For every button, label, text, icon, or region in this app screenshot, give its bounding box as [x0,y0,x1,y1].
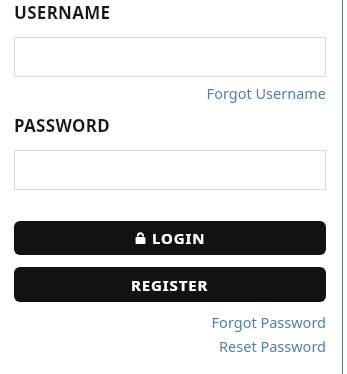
button[interactable] [14,150,326,190]
button[interactable] [14,37,326,77]
button[interactable]: Forgot Username [206,83,326,103]
button[interactable]: REGISTER [14,267,326,302]
staticText: USERNAME [14,1,111,24]
button[interactable]: Reset Password [219,336,326,356]
staticText: REGISTER [131,275,209,295]
button[interactable]: Lock [14,221,326,255]
button[interactable]: Forgot Password [211,312,326,332]
staticText: LOGIN [152,228,206,248]
staticText: PASSWORD [14,114,110,137]
other: Lock [135,232,146,244]
